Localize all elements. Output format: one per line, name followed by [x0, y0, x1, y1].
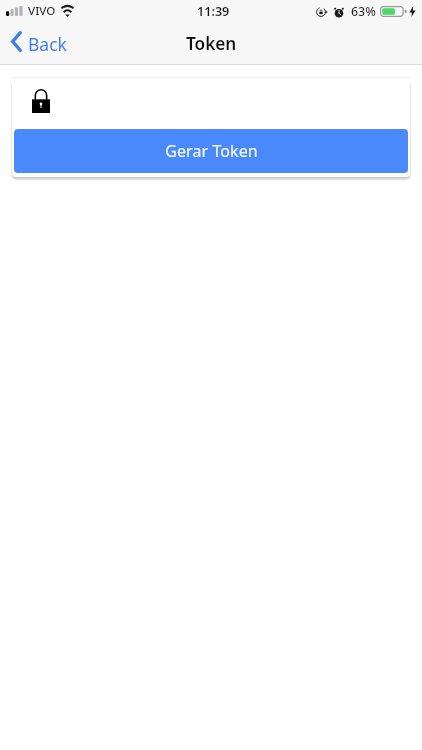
button[interactable]: Gerar Token — [14, 129, 408, 173]
staticText: Gerar Token — [165, 140, 258, 162]
staticText: 63% — [351, 3, 376, 20]
staticText: 11:39 — [197, 3, 230, 20]
staticText: Token — [186, 32, 237, 55]
staticText: VIVO — [28, 3, 56, 19]
staticText: Back — [28, 32, 67, 56]
button[interactable]: Back — [0, 22, 75, 65]
